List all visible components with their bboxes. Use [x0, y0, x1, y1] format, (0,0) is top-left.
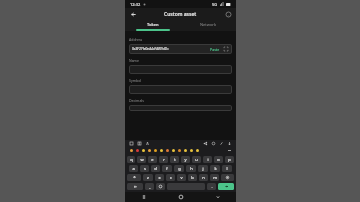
button[interactable]: g: [174, 165, 184, 172]
button[interactable]: w: [137, 156, 146, 163]
staticText: j: [202, 166, 204, 171]
staticText: Paste: [210, 47, 220, 52]
button[interactable]: Emoji: [135, 148, 140, 153]
button[interactable]: Paste: [209, 47, 221, 52]
staticText: k: [214, 166, 217, 171]
staticText: e: [151, 157, 154, 162]
button[interactable]: Back: [199, 192, 236, 202]
button[interactable]: Emoji: [153, 148, 158, 153]
button[interactable]: v: [177, 174, 186, 181]
button[interactable]: [129, 65, 232, 74]
button[interactable]: f: [162, 165, 172, 172]
button[interactable]: Backspace: [227, 148, 232, 153]
button[interactable]: Token: [125, 20, 180, 29]
button[interactable]: [129, 105, 232, 111]
button[interactable]: Numbers and symbols: [127, 183, 143, 190]
staticText: o: [217, 157, 220, 162]
button[interactable]: Emoji: [129, 148, 134, 153]
button[interactable]: Emoji: [159, 148, 164, 153]
button[interactable]: [129, 85, 232, 94]
button[interactable]: Enter: [218, 183, 234, 190]
button[interactable]: Translate: [145, 141, 150, 146]
button[interactable]: Share: [203, 141, 208, 146]
staticText: a: [132, 166, 135, 171]
staticText: Custom asset: [164, 11, 197, 18]
staticText: y: [184, 157, 187, 162]
staticText: Symbol: [129, 78, 142, 83]
button[interactable]: k: [210, 165, 220, 172]
button[interactable]: u: [192, 156, 201, 163]
staticText: v: [180, 175, 183, 180]
button[interactable]: t: [170, 156, 179, 163]
staticText: i: [207, 157, 209, 162]
button[interactable]: Emoji: [156, 183, 165, 190]
button[interactable]: ,: [145, 183, 154, 190]
staticText: m: [213, 175, 217, 180]
staticText: q: [130, 157, 133, 162]
button[interactable]: r: [159, 156, 168, 163]
staticText: 5G: [212, 2, 218, 7]
button[interactable]: q: [127, 156, 135, 163]
button[interactable]: Emoji: [147, 148, 152, 153]
button[interactable]: n: [199, 174, 208, 181]
button[interactable]: l: [222, 165, 232, 172]
button[interactable]: Theme: [219, 141, 224, 146]
button[interactable]: Emoji: [195, 148, 200, 153]
staticText: Address: [129, 37, 143, 42]
staticText: ,: [149, 184, 151, 189]
button[interactable]: Backspace: [221, 174, 234, 181]
button[interactable]: s: [140, 165, 149, 172]
button[interactable]: Home: [162, 192, 199, 202]
button[interactable]: h: [186, 165, 196, 172]
button[interactable]: Emoji: [171, 148, 176, 153]
button[interactable]: i: [203, 156, 212, 163]
staticText: 0x3F27fe0eA4cFAf09dDcrVdsFdf3CdE: [132, 47, 170, 51]
button[interactable]: o: [214, 156, 223, 163]
staticText: u: [195, 157, 198, 162]
staticText: p: [228, 157, 231, 162]
button[interactable]: x: [155, 174, 164, 181]
button[interactable]: Emoji: [141, 148, 146, 153]
button[interactable]: .: [207, 183, 216, 190]
staticText: h: [190, 166, 193, 171]
button[interactable]: More: [227, 141, 232, 146]
button[interactable]: z: [143, 174, 153, 181]
button[interactable]: Network: [180, 20, 236, 29]
staticText: w: [140, 157, 144, 162]
button[interactable]: Shift: [127, 174, 141, 181]
staticText: Network: [200, 22, 217, 27]
button[interactable]: c: [166, 174, 175, 181]
button[interactable]: Settings: [211, 141, 216, 146]
button[interactable]: Emoji: [177, 148, 182, 153]
button[interactable]: Back: [128, 9, 138, 19]
staticText: r: [163, 157, 165, 162]
button[interactable]: 0x3F27fe0eA4cFAf09dDcrVdsFdf3CdE: [129, 44, 232, 54]
staticText: g: [178, 166, 181, 171]
button[interactable]: Emoji: [183, 148, 188, 153]
button[interactable]: b: [188, 174, 197, 181]
staticText: n: [202, 175, 205, 180]
staticText: Name: [129, 58, 139, 63]
button[interactable]: d: [151, 165, 160, 172]
staticText: z: [147, 175, 149, 180]
button[interactable]: Help: [223, 9, 233, 19]
button[interactable]: j: [198, 165, 208, 172]
button[interactable]: a: [129, 165, 138, 172]
button[interactable]: Scan QR code: [223, 46, 229, 52]
button[interactable]: Sticker: [137, 141, 142, 146]
staticText: b: [191, 175, 194, 180]
staticText: Decimals: [129, 98, 144, 103]
button[interactable]: e: [148, 156, 157, 163]
staticText: l: [226, 166, 228, 171]
button[interactable]: Recents: [125, 192, 162, 202]
staticText: f: [166, 166, 168, 171]
button[interactable]: Emoji: [165, 148, 170, 153]
button[interactable]: p: [225, 156, 234, 163]
button[interactable]: Clipboard: [129, 141, 134, 146]
button[interactable]: y: [181, 156, 190, 163]
staticText: c: [170, 175, 172, 180]
button[interactable]: Emoji: [189, 148, 194, 153]
button[interactable]: m: [210, 174, 219, 181]
